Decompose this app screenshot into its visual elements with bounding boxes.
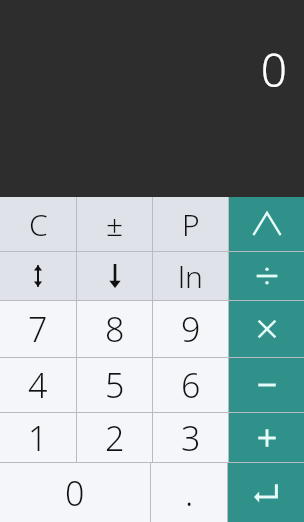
button[interactable]: Multiply bbox=[229, 301, 304, 357]
staticText: ± bbox=[106, 204, 124, 245]
button[interactable]: Power bbox=[229, 197, 304, 251]
button[interactable]: Plus bbox=[229, 413, 304, 462]
staticText: 3 bbox=[181, 415, 201, 461]
button[interactable]: 6 bbox=[153, 358, 228, 412]
button[interactable]: 3 bbox=[153, 413, 228, 462]
button[interactable]: C bbox=[0, 197, 76, 251]
staticText: . bbox=[185, 470, 194, 516]
staticText: 6 bbox=[181, 362, 201, 408]
staticText: 9 bbox=[181, 306, 201, 352]
button[interactable]: 7 bbox=[0, 301, 76, 357]
staticText: 0 bbox=[65, 470, 85, 516]
button[interactable]: Equals bbox=[228, 463, 304, 522]
button[interactable]: 9 bbox=[153, 301, 228, 357]
staticText: 8 bbox=[105, 306, 125, 352]
button[interactable]: 8 bbox=[77, 301, 152, 357]
button[interactable]: 2 bbox=[77, 413, 152, 462]
staticText: 0 bbox=[260, 38, 287, 101]
button[interactable]: 4 bbox=[0, 358, 76, 412]
button[interactable]: Divide bbox=[229, 252, 304, 300]
staticText: 1 bbox=[28, 415, 48, 461]
button[interactable]: ± bbox=[77, 197, 152, 251]
button[interactable]: . bbox=[151, 463, 227, 522]
button[interactable]: 1 bbox=[0, 413, 76, 462]
staticText: P bbox=[182, 204, 200, 245]
button[interactable]: Minus bbox=[229, 358, 304, 412]
staticText: 7 bbox=[28, 306, 48, 352]
staticText: ln bbox=[178, 256, 203, 297]
button[interactable]: Down bbox=[77, 252, 152, 300]
button[interactable]: Swap bbox=[0, 252, 76, 300]
button[interactable]: ln bbox=[153, 252, 228, 300]
staticText: 2 bbox=[105, 415, 125, 461]
staticText: 5 bbox=[105, 362, 125, 408]
staticText: C bbox=[29, 204, 48, 245]
button[interactable]: P bbox=[153, 197, 228, 251]
button[interactable]: 0 bbox=[0, 463, 150, 522]
button[interactable]: 5 bbox=[77, 358, 152, 412]
staticText: 4 bbox=[28, 362, 48, 408]
